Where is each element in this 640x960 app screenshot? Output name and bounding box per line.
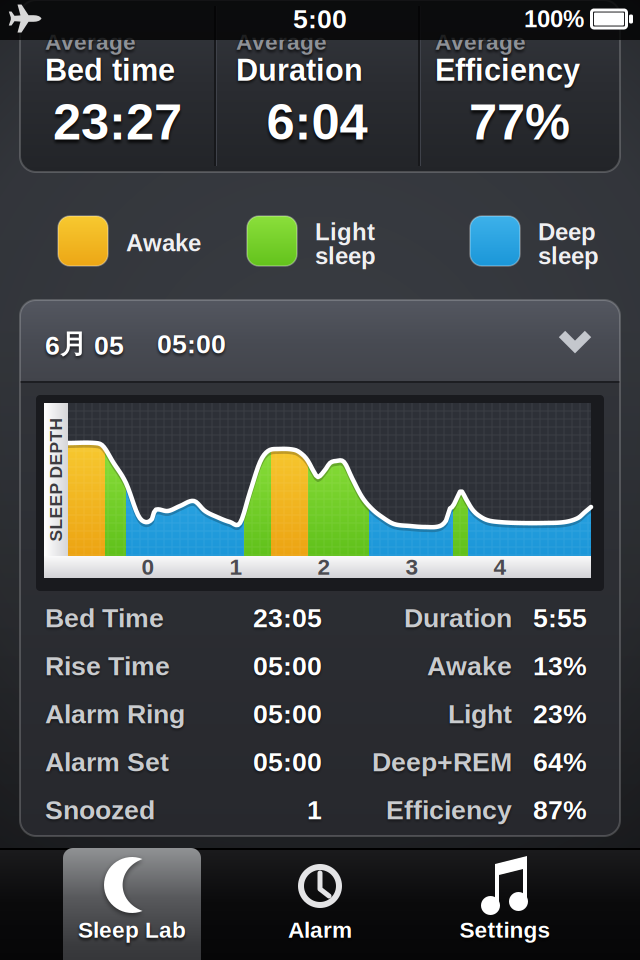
- staticText: Awake: [427, 651, 512, 680]
- staticText: 100%: [524, 6, 584, 32]
- staticText: sleep: [538, 243, 599, 269]
- staticText: 2: [317, 555, 330, 579]
- staticText: Duration: [236, 53, 363, 87]
- staticText: Sleep Lab: [78, 918, 186, 942]
- staticText: Efficiency: [435, 53, 580, 87]
- staticText: 77%: [469, 94, 570, 150]
- staticText: 64%: [533, 747, 587, 776]
- staticText: Alarm: [288, 918, 352, 942]
- button[interactable]: Alarm: [227, 848, 413, 960]
- staticText: 1: [229, 555, 242, 579]
- staticText: Average: [45, 30, 136, 54]
- staticText: Deep+REM: [372, 747, 512, 776]
- staticText: 5:55: [533, 603, 587, 632]
- staticText: Deep: [538, 219, 596, 245]
- staticText: Settings: [459, 918, 550, 942]
- staticText: 4: [493, 555, 506, 579]
- staticText: Average: [435, 30, 526, 54]
- staticText: 05:00: [157, 329, 226, 358]
- staticText: 05:00: [253, 699, 322, 728]
- staticText: 13%: [533, 651, 587, 680]
- staticText: Bed Time: [45, 603, 164, 632]
- staticText: Alarm Set: [45, 747, 169, 776]
- button[interactable]: Collapse day: [20, 300, 620, 381]
- staticText: 5:00: [293, 4, 347, 33]
- staticText: 05:00: [253, 747, 322, 776]
- staticText: Bed time: [45, 53, 175, 87]
- staticText: sleep: [315, 243, 376, 269]
- staticText: SLEEP DEPTH: [0, 470, 118, 489]
- staticText: Alarm Ring: [45, 699, 185, 728]
- staticText: Snoozed: [45, 795, 155, 824]
- staticText: Duration: [404, 603, 512, 632]
- staticText: Light: [315, 219, 375, 245]
- staticText: Rise Time: [45, 651, 170, 680]
- staticText: 05:00: [253, 651, 322, 680]
- staticText: 23%: [533, 699, 587, 728]
- staticText: Average: [236, 30, 327, 54]
- staticText: 6月 05: [45, 328, 124, 360]
- staticText: Light: [448, 699, 512, 728]
- staticText: 3: [405, 555, 418, 579]
- staticText: 1: [307, 795, 322, 824]
- staticText: Awake: [126, 230, 201, 256]
- button[interactable]: Settings: [412, 848, 598, 960]
- button[interactable]: Sleep Lab: [39, 848, 225, 960]
- staticText: 23:05: [253, 603, 322, 632]
- staticText: 6:04: [266, 94, 367, 150]
- staticText: Efficiency: [386, 795, 512, 824]
- staticText: 0: [141, 555, 154, 579]
- staticText: 23:27: [53, 94, 182, 150]
- staticText: 87%: [533, 795, 587, 824]
